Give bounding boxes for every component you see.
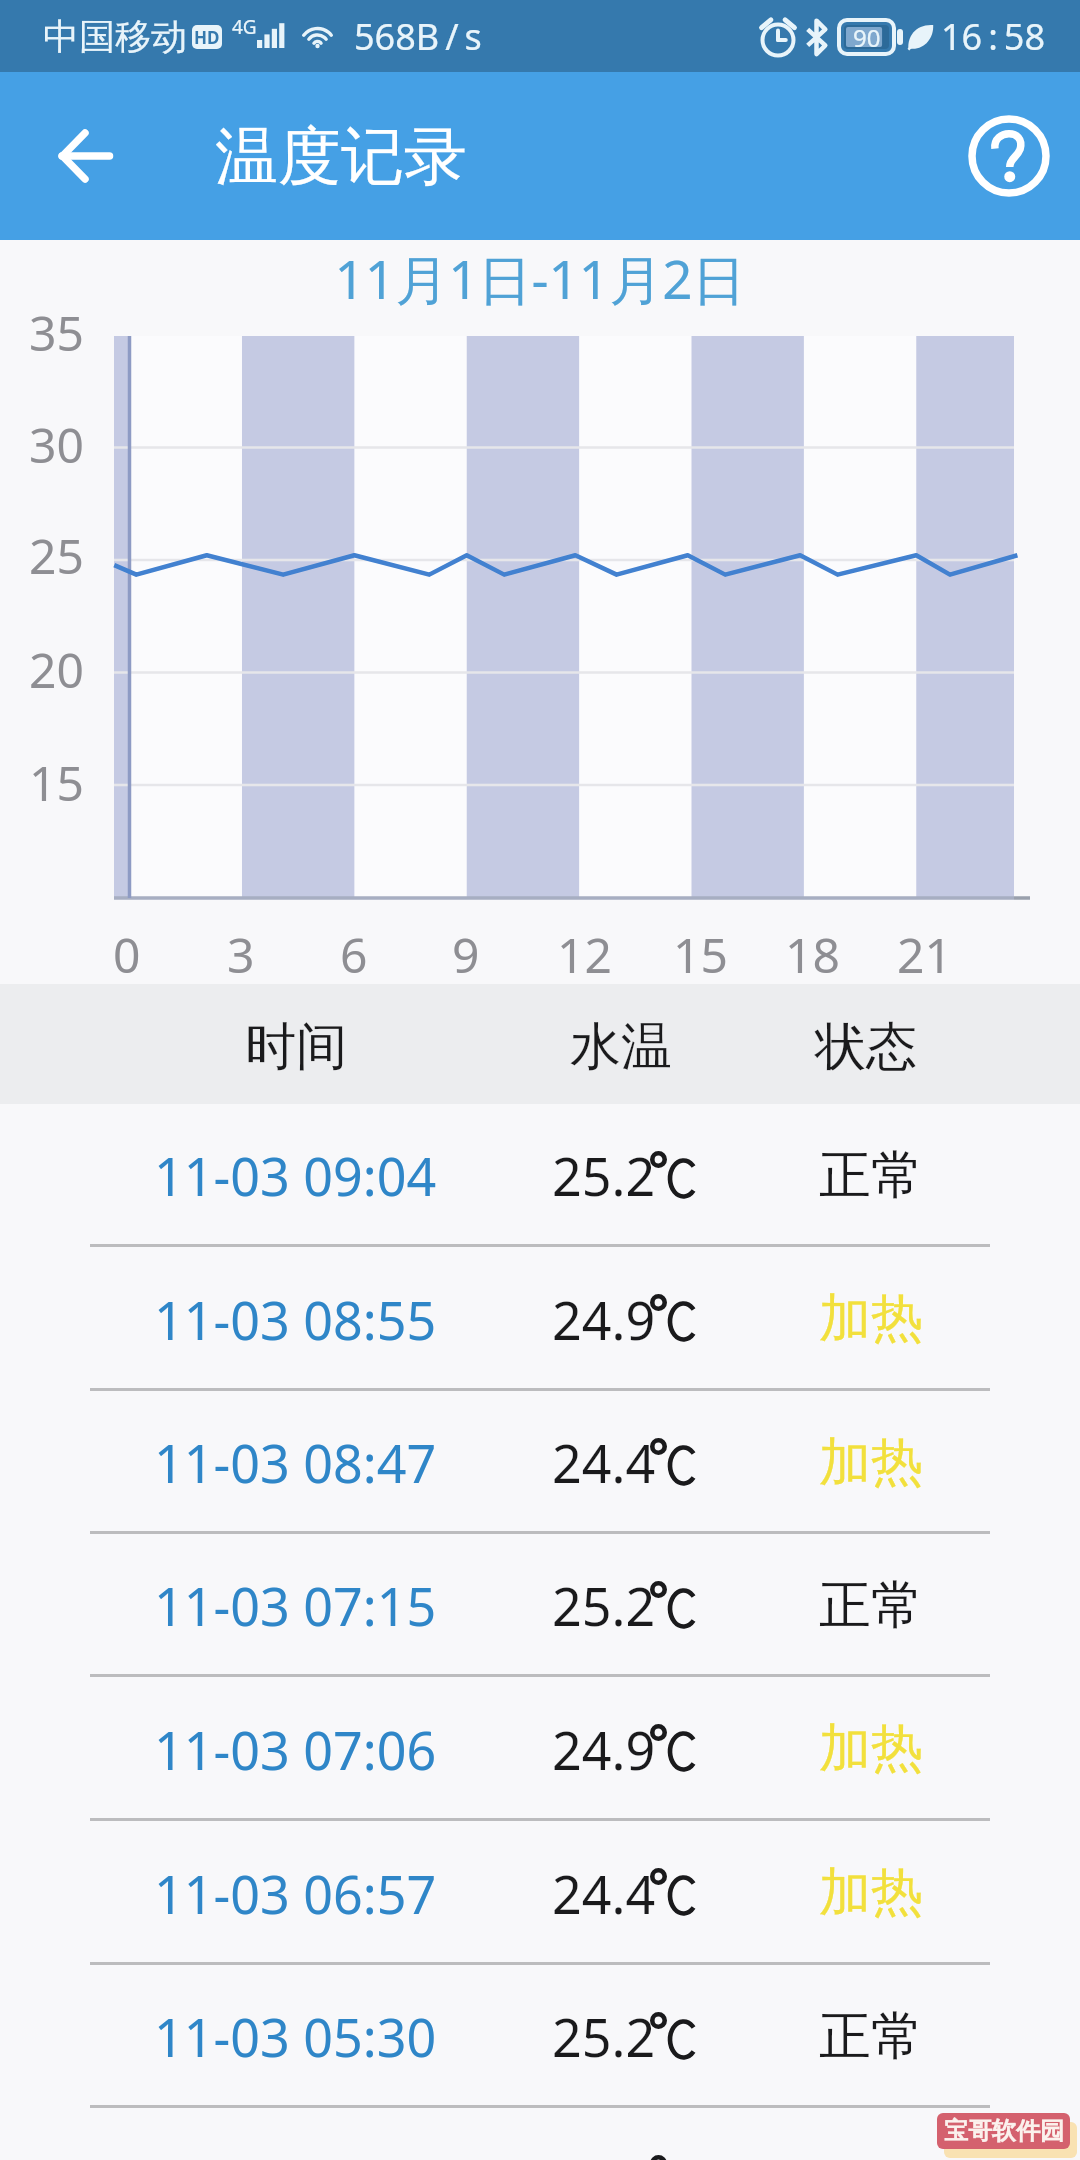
staticText: 16 : 58 xyxy=(941,12,1045,61)
staticText: 11-03 07:15 xyxy=(154,1570,437,1641)
button[interactable]: 11-03 07:15 xyxy=(0,1534,1080,1677)
staticText: 11-03 06:57 xyxy=(154,1858,437,1929)
staticText: 11-03 05:30 xyxy=(154,2001,437,2072)
staticText: 35 xyxy=(29,300,84,365)
staticText: 4G xyxy=(232,14,257,40)
staticText: 12 xyxy=(557,922,612,987)
staticText: 宝哥软件园 xyxy=(944,2116,1064,2146)
staticText: 24.9 xyxy=(552,1714,656,1785)
button[interactable]: 11-03 05:30 xyxy=(0,1965,1080,2108)
staticText: 21 xyxy=(897,922,952,987)
button[interactable]: 11-03 08:55 xyxy=(0,1247,1080,1391)
staticText: 11-03 08:55 xyxy=(154,1284,437,1355)
staticText: 6 xyxy=(340,922,368,987)
staticText: 加热 xyxy=(819,1430,923,1496)
staticText: 30 xyxy=(29,412,84,477)
staticText: 11月1日-11月2日 xyxy=(0,242,1080,314)
staticText: 20 xyxy=(29,637,84,702)
staticText: 15 xyxy=(673,922,728,987)
button[interactable]: 11-03 09:04 xyxy=(0,1104,1080,1247)
button[interactable]: 11-03 05:21 xyxy=(0,2108,1080,2160)
staticText: 正常 xyxy=(819,1573,923,1639)
button[interactable]: Help xyxy=(961,108,1057,204)
staticText: 11-03 09:04 xyxy=(154,1140,437,1211)
staticText: 加热 xyxy=(819,1860,923,1926)
staticText: 15 xyxy=(29,750,84,815)
staticText: 0 xyxy=(113,922,141,987)
staticText: 加热 xyxy=(819,1286,923,1352)
staticText: 11-03 08:47 xyxy=(154,1427,437,1498)
button[interactable]: 11-03 06:57 xyxy=(0,1821,1080,1965)
staticText: 24.9 xyxy=(552,1284,656,1355)
staticText: 90 xyxy=(853,21,881,54)
staticText: 24.9 xyxy=(552,2144,656,2160)
staticText: 状态 xyxy=(815,1015,917,1079)
button[interactable]: 11-03 08:47 xyxy=(0,1391,1080,1534)
staticText: 加热 xyxy=(819,1716,923,1782)
staticText: 24.4 xyxy=(552,1858,656,1929)
staticText: 3 xyxy=(227,922,255,987)
button[interactable]: 11-03 07:06 xyxy=(0,1677,1080,1821)
staticText: 温度记录 xyxy=(215,117,467,196)
staticText: 时间 xyxy=(245,1015,347,1079)
staticText: 25.2 xyxy=(552,1570,656,1641)
staticText: 18 xyxy=(785,922,840,987)
staticText: 9 xyxy=(452,922,480,987)
staticText: 正常 xyxy=(819,1143,923,1209)
staticText: 25 xyxy=(29,523,84,588)
staticText: 568B / s xyxy=(354,12,482,61)
staticText: 11-03 07:06 xyxy=(154,1714,437,1785)
staticText: 25.2 xyxy=(552,2001,656,2072)
staticText: HD xyxy=(194,26,220,49)
staticText: 中国移动 xyxy=(43,14,187,59)
button[interactable]: Back xyxy=(37,108,133,204)
staticText: 正常 xyxy=(819,2004,923,2070)
staticText: 水温 xyxy=(570,1015,672,1079)
staticText: 24.4 xyxy=(552,1427,656,1498)
staticText: 25.2 xyxy=(552,1140,656,1211)
